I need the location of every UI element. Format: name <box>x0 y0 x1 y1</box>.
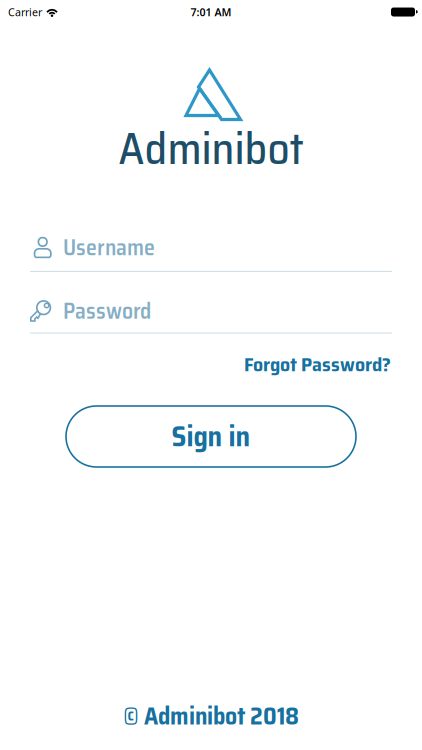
staticText: Username <box>63 230 155 265</box>
staticText: Carrier <box>8 5 42 19</box>
button[interactable]: Sign in <box>66 406 356 467</box>
button[interactable]: Password <box>0 294 422 333</box>
staticText: Adminibot <box>118 114 303 183</box>
staticText: 7:01 AM <box>190 5 231 19</box>
button[interactable]: Forgot Password? <box>244 348 391 380</box>
staticText: Sign in <box>171 414 250 459</box>
staticText: Password <box>63 294 151 328</box>
staticText: Forgot Password? <box>244 348 391 380</box>
staticText: © Adminibot 2018 <box>123 697 299 735</box>
button[interactable]: Username <box>0 230 422 272</box>
